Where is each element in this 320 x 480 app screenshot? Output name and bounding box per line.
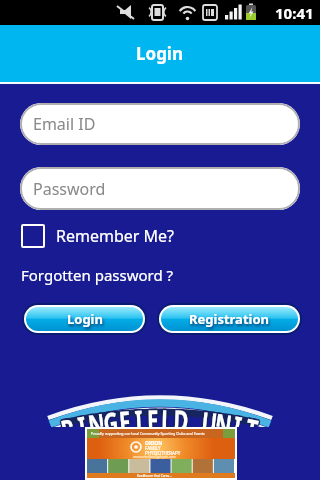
button[interactable]: Login <box>22 303 147 335</box>
button[interactable]: Password <box>20 167 300 210</box>
staticText: Login <box>67 310 103 328</box>
button[interactable]: Remember Me? <box>21 224 175 248</box>
staticText: Password <box>33 178 106 200</box>
button[interactable]: Registration <box>157 303 302 335</box>
staticText: Login <box>136 42 184 65</box>
staticText: Registration <box>189 310 270 328</box>
button[interactable] <box>85 427 237 480</box>
button[interactable]: Email ID <box>20 103 300 145</box>
staticText: Remember Me? <box>56 225 175 247</box>
staticText: Email ID <box>33 113 96 135</box>
staticText: 10:41 <box>275 3 314 23</box>
button[interactable]: Forgotten password ? <box>21 265 174 285</box>
